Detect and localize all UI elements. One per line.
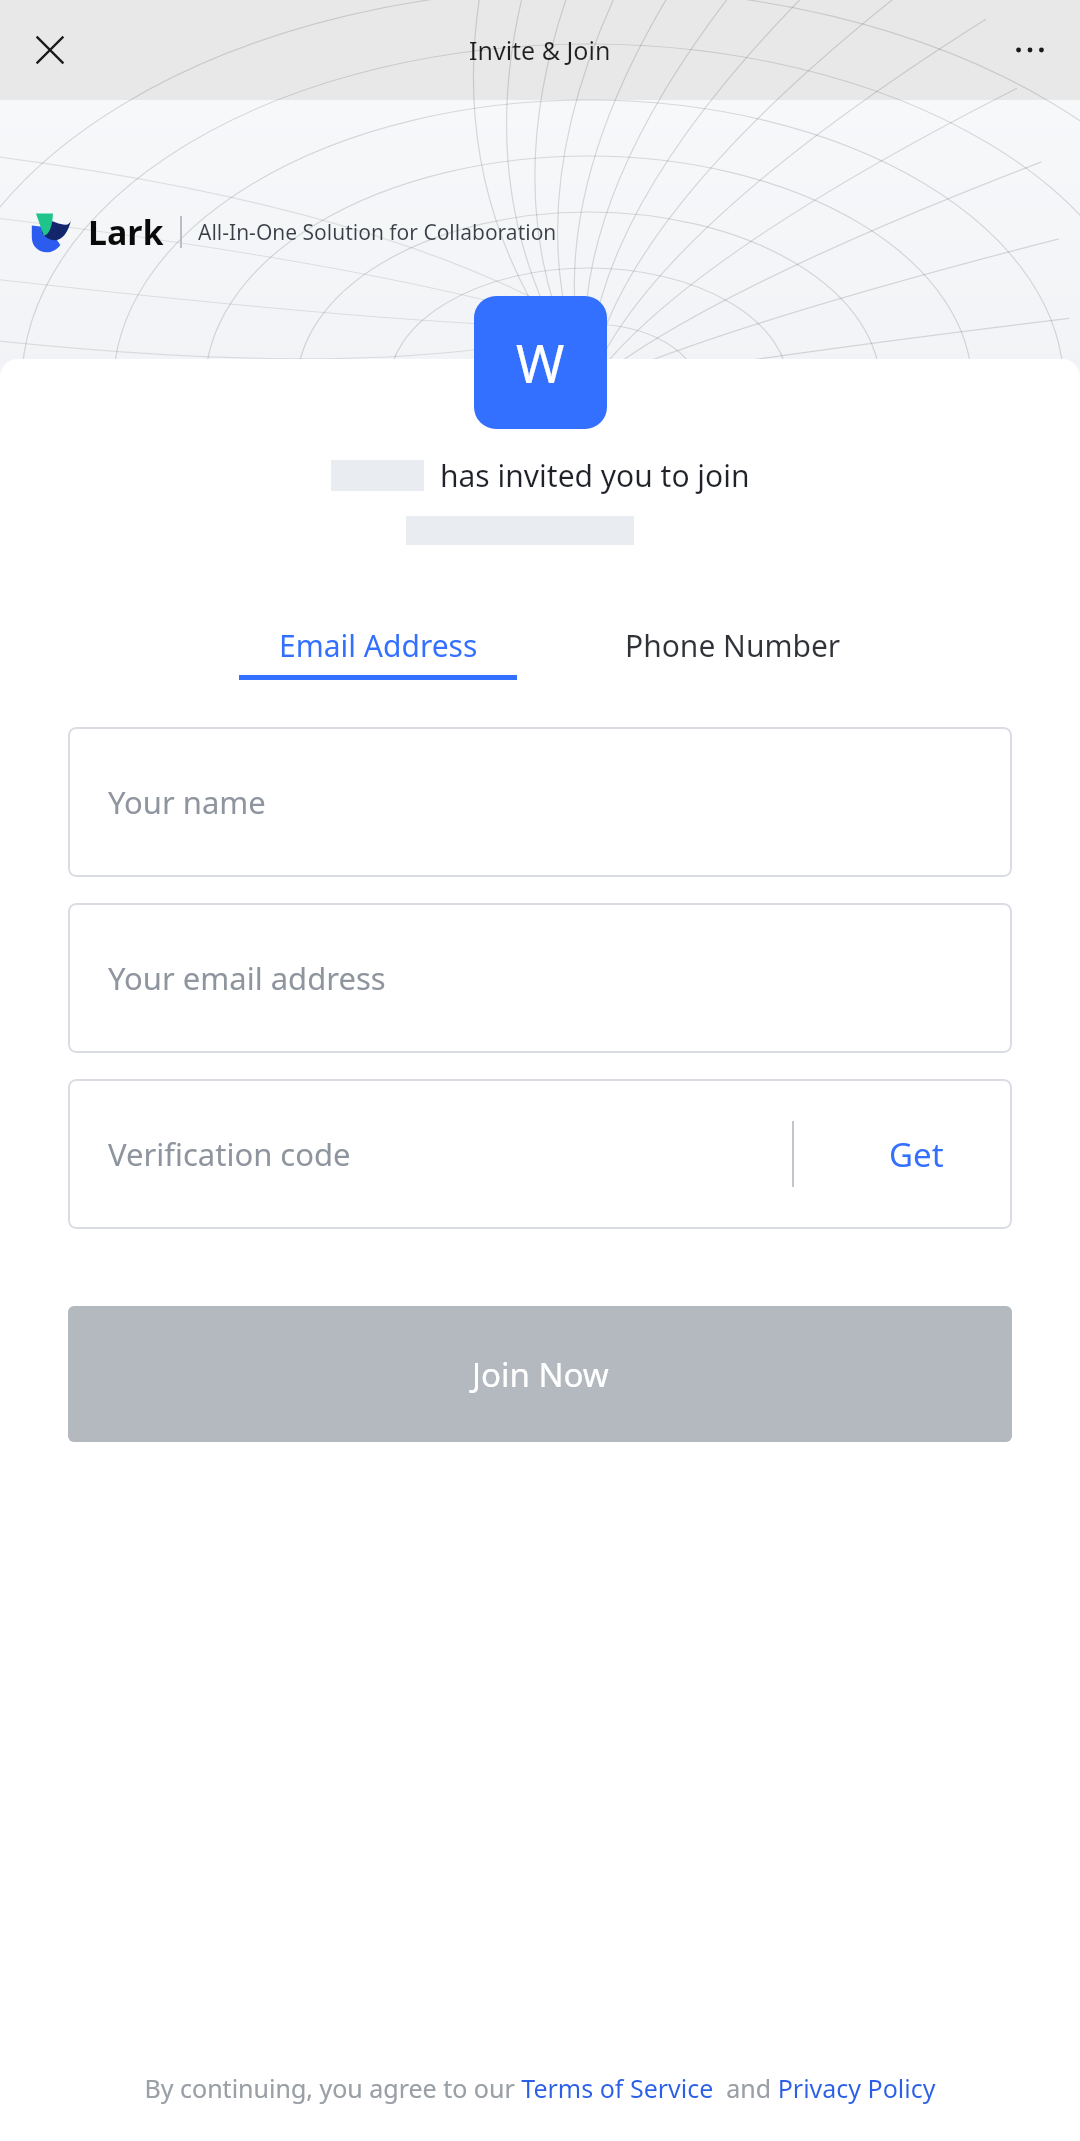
button[interactable]: More options — [994, 14, 1066, 86]
staticText: Get — [889, 1132, 944, 1177]
staticText: Invite & Join — [469, 33, 611, 67]
staticText: W — [516, 327, 565, 398]
staticText: Your email address — [108, 957, 386, 999]
staticText: Your name — [108, 781, 266, 823]
button[interactable]: Phone Number — [619, 625, 847, 666]
button[interactable]: Your email address — [68, 903, 1012, 1053]
button[interactable]: Join Now — [68, 1306, 1012, 1442]
staticText: Phone Number — [625, 625, 841, 666]
staticText: Email Address — [279, 625, 478, 666]
staticText: Verification code — [108, 1133, 351, 1175]
button[interactable]: By continuing, you agree to our Terms of… — [40, 2071, 1040, 2105]
button[interactable]: Get — [871, 1116, 962, 1193]
staticText: Join Now — [472, 1352, 609, 1397]
staticText: All-In-One Solution for Collaboration — [198, 218, 557, 247]
staticText: Lark — [88, 209, 164, 255]
button[interactable]: Verification code — [68, 1079, 1012, 1229]
button[interactable]: Your name — [68, 727, 1012, 877]
button[interactable]: Close — [14, 14, 86, 86]
staticText: has invited you to join — [440, 455, 750, 496]
button[interactable]: Email Address — [233, 625, 523, 680]
